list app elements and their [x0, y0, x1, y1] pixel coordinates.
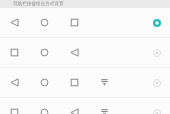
button[interactable]: Recents, Home, Back	[0, 38, 170, 68]
staticText: 导航栏按键组合方式设置	[13, 1, 64, 7]
button[interactable]: Recents, Home, Back, Hide keyboard	[0, 98, 170, 114]
button[interactable]: Back, Home, Recents, Hide keyboard	[0, 68, 170, 98]
button[interactable]: Back, Home, Recents	[0, 8, 170, 38]
